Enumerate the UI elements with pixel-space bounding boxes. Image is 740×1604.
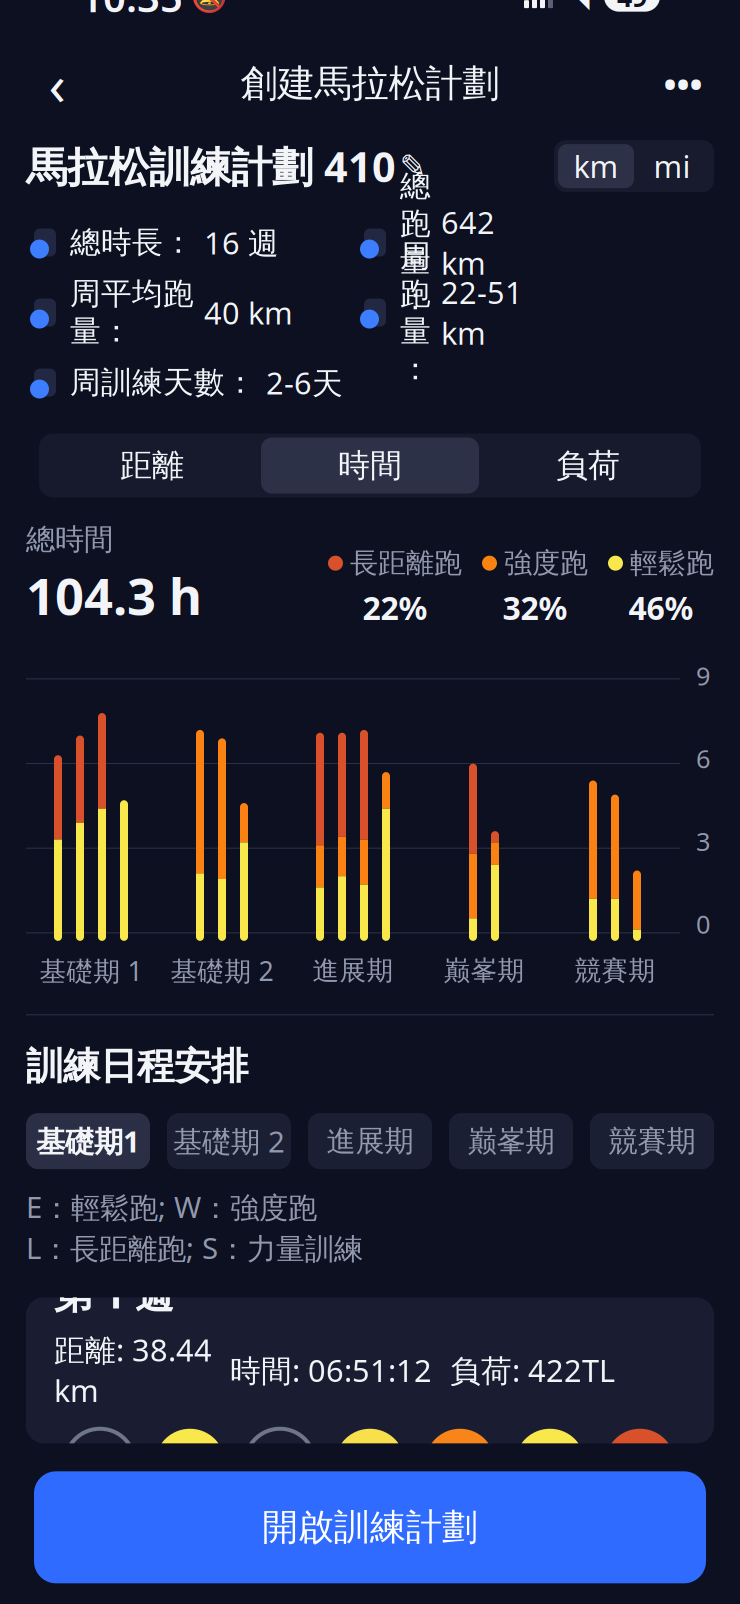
- button[interactable]: 競賽期: [590, 1113, 714, 1169]
- staticText: 0: [696, 907, 710, 941]
- staticText: 10:35: [80, 0, 183, 23]
- button[interactable]: 負荷: [479, 437, 697, 493]
- staticText: ‹: [48, 46, 65, 121]
- staticText: 總跑量：: [400, 167, 431, 318]
- staticText: 2-6天: [266, 362, 343, 403]
- staticText: 40 km: [204, 292, 293, 333]
- staticText: 競賽期: [608, 1123, 695, 1159]
- staticText: 強度跑: [504, 546, 588, 580]
- button[interactable]: 基礎期 2: [167, 1113, 291, 1169]
- staticText: 輕鬆跑: [630, 546, 714, 580]
- staticText: 負荷: [556, 446, 620, 485]
- staticText: 時間: 06:51:12: [230, 1350, 432, 1390]
- button[interactable]: 基礎期1: [26, 1113, 150, 1169]
- staticText: 周訓練天數：: [70, 364, 256, 401]
- button[interactable]: 巅峯期: [449, 1113, 573, 1169]
- staticText: 長距離跑: [350, 546, 462, 580]
- staticText: 16 週: [204, 222, 279, 263]
- staticText: 基礎期 2: [170, 953, 273, 988]
- staticText: 競賽期: [574, 954, 655, 987]
- button[interactable]: 距離: [43, 437, 261, 493]
- staticText: 642 km: [441, 202, 495, 283]
- staticText: 總時長：: [70, 224, 194, 261]
- staticText: 進展期: [312, 954, 393, 987]
- staticText: 時間: [338, 446, 402, 485]
- button[interactable]: More options: [652, 53, 714, 115]
- staticText: 基礎期 1: [39, 953, 142, 988]
- staticText: 周跑量：: [400, 237, 431, 388]
- staticText: 馬拉松訓練計劃 410: [26, 139, 396, 194]
- button[interactable]: mi: [634, 144, 710, 188]
- staticText: •••: [663, 61, 702, 107]
- button[interactable]: 時間: [261, 437, 479, 493]
- staticText: km: [573, 146, 618, 186]
- staticText: 22%: [362, 586, 427, 629]
- staticText: 32%: [502, 586, 567, 629]
- staticText: 訓練日程安排: [26, 1043, 248, 1089]
- staticText: 開啟訓練計劃: [262, 1505, 478, 1549]
- staticText: 3: [696, 824, 710, 858]
- staticText: 創建馬拉松計劃: [240, 61, 499, 107]
- staticText: 9: [696, 659, 710, 692]
- staticText: 22-51 km: [441, 272, 523, 353]
- staticText: 進展期: [326, 1123, 413, 1159]
- staticText: E：輕鬆跑; W：強度跑: [26, 1187, 317, 1226]
- staticText: 第 1 週: [54, 1268, 174, 1319]
- staticText: 總時間: [26, 521, 113, 557]
- staticText: L：長距離跑; S：力量訓練: [26, 1228, 363, 1267]
- staticText: 距離: [120, 446, 184, 485]
- button[interactable]: km: [558, 144, 634, 188]
- staticText: 46%: [628, 586, 693, 629]
- staticText: 巅峯期: [467, 1123, 554, 1159]
- button[interactable]: 進展期: [308, 1113, 432, 1169]
- button[interactable]: Edit plan name: [396, 149, 430, 183]
- staticText: ✎: [399, 148, 426, 184]
- staticText: 周平均跑量：: [70, 275, 194, 350]
- button[interactable]: Back: [26, 53, 88, 115]
- button[interactable]: 開啟訓練計劃: [34, 1471, 706, 1583]
- staticText: 距離: 38.44 km: [54, 1329, 212, 1411]
- staticText: 巅峯期: [443, 954, 524, 987]
- staticText: 49: [617, 0, 647, 14]
- staticText: 基礎期 2: [173, 1122, 285, 1161]
- staticText: 6: [696, 742, 710, 775]
- staticText: 104.3 h: [26, 562, 202, 629]
- staticText: 🔕: [191, 0, 228, 13]
- staticText: mi: [653, 146, 690, 186]
- staticText: 負荷: 422TL: [450, 1350, 615, 1390]
- staticText: 基礎期1: [36, 1122, 140, 1161]
- staticText: ◥: [567, 0, 590, 13]
